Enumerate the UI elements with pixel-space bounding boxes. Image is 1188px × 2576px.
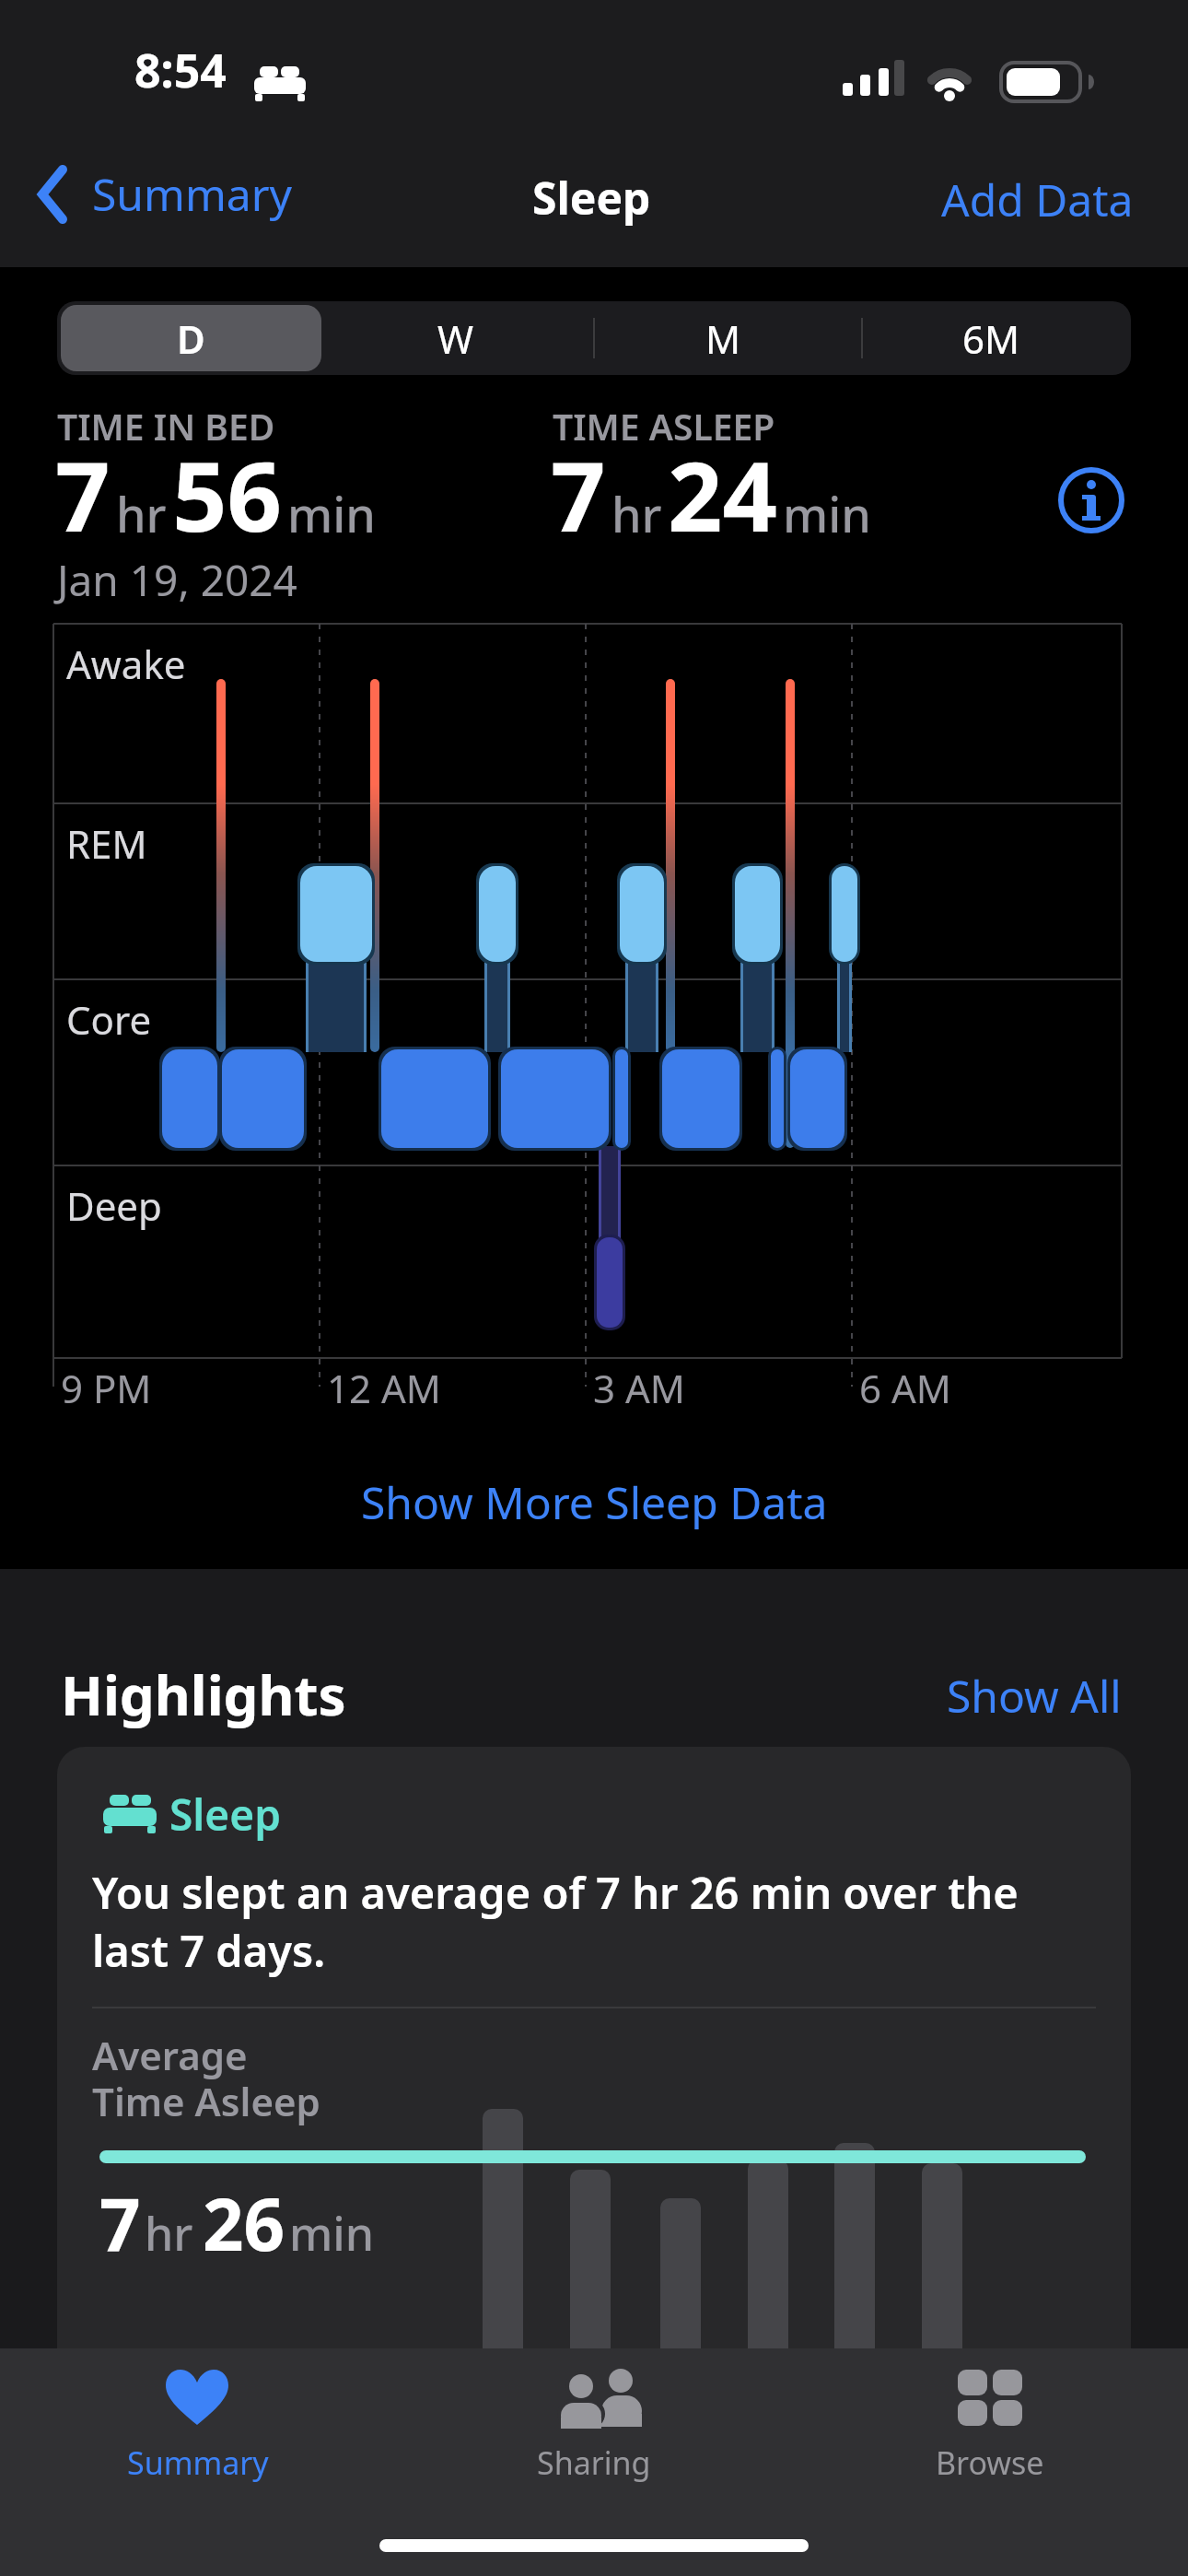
- staticText: Jan 19, 2024: [57, 551, 297, 609]
- button[interactable]: Sharing: [483, 2355, 705, 2493]
- staticText: REM: [66, 817, 147, 870]
- staticText: 3 AM: [593, 1362, 685, 1414]
- staticText: M: [705, 312, 741, 365]
- staticText: TIME ASLEEP: [553, 402, 775, 451]
- button[interactable]: Summary: [37, 164, 293, 224]
- staticText: Deep: [66, 1179, 162, 1232]
- staticText: 7: [551, 429, 606, 560]
- staticText: Highlights: [61, 1657, 346, 1732]
- staticText: Sleep: [532, 168, 651, 228]
- staticText: You slept an average of 7 hr 26 min over…: [92, 1863, 1019, 1979]
- button[interactable]: 6M: [861, 305, 1122, 371]
- staticText: 6M: [962, 312, 1020, 365]
- button[interactable]: Summary: [87, 2355, 309, 2493]
- button[interactable]: D: [61, 305, 321, 371]
- staticText: 12 AM: [327, 1362, 441, 1414]
- staticText: Sharing: [537, 2441, 651, 2484]
- button[interactable]: Show More Sleep Data: [0, 1472, 1188, 1532]
- button[interactable]: Add Data: [0, 0, 192, 60]
- staticText: hr: [145, 2202, 193, 2265]
- staticText: min: [287, 481, 376, 546]
- staticText: Average Time Asleep: [92, 2029, 320, 2128]
- staticText: 7: [99, 2174, 141, 2272]
- staticText: 7: [55, 429, 111, 560]
- staticText: Browse: [936, 2441, 1044, 2484]
- staticText: Summary: [92, 164, 293, 224]
- staticText: 26: [203, 2174, 285, 2272]
- staticText: Core: [66, 993, 152, 1046]
- button[interactable]: Sleep: [57, 1747, 1131, 2392]
- staticText: TIME IN BED: [57, 402, 275, 451]
- button[interactable]: M: [593, 305, 854, 371]
- button[interactable]: [1058, 467, 1124, 533]
- staticText: Summary: [127, 2441, 269, 2484]
- staticText: 6 AM: [859, 1362, 951, 1414]
- staticText: Sleep: [169, 1786, 281, 1844]
- button[interactable]: W: [325, 305, 586, 371]
- staticText: min: [783, 481, 871, 546]
- staticText: hr: [611, 481, 662, 546]
- staticText: Awake: [66, 638, 186, 690]
- staticText: 24: [668, 429, 777, 560]
- staticText: hr: [116, 481, 167, 546]
- staticText: 56: [172, 429, 282, 560]
- staticText: 8:54: [134, 39, 227, 101]
- button[interactable]: Browse: [879, 2355, 1101, 2493]
- staticText: 9 PM: [61, 1362, 152, 1414]
- staticText: Show More Sleep Data: [361, 1472, 828, 1532]
- staticText: D: [177, 312, 205, 365]
- staticText: W: [437, 312, 474, 365]
- staticText: min: [289, 2202, 375, 2265]
- button[interactable]: Show All: [0, 0, 175, 60]
